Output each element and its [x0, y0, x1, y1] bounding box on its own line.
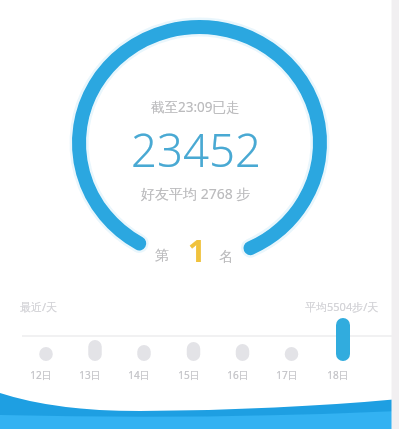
staticText: 第	[155, 247, 169, 265]
button[interactable]: 17日	[276, 368, 298, 382]
staticText: 16日	[227, 368, 249, 382]
staticText: 14日	[128, 368, 150, 382]
staticText: 12日	[30, 368, 52, 382]
staticText: 1	[188, 229, 206, 271]
staticText: 最近/天	[20, 299, 58, 314]
button[interactable]: 14日	[128, 368, 150, 382]
button[interactable]: 18日	[327, 368, 349, 382]
button[interactable]: 13日	[79, 368, 101, 382]
staticText: 平均5504步/天	[305, 299, 379, 314]
staticText: 13日	[79, 368, 101, 382]
staticText: 23452	[131, 118, 261, 180]
staticText: 好友平均 2768 步	[141, 184, 251, 203]
staticText: 15日	[178, 368, 200, 382]
button[interactable]: 15日	[178, 368, 200, 382]
staticText: 18日	[327, 368, 349, 382]
button[interactable]: 16日	[227, 368, 249, 382]
staticText: 17日	[276, 368, 298, 382]
staticText: 截至23:09已走	[151, 98, 240, 116]
button[interactable]: 12日	[30, 368, 52, 382]
staticText: 名	[219, 248, 233, 266]
